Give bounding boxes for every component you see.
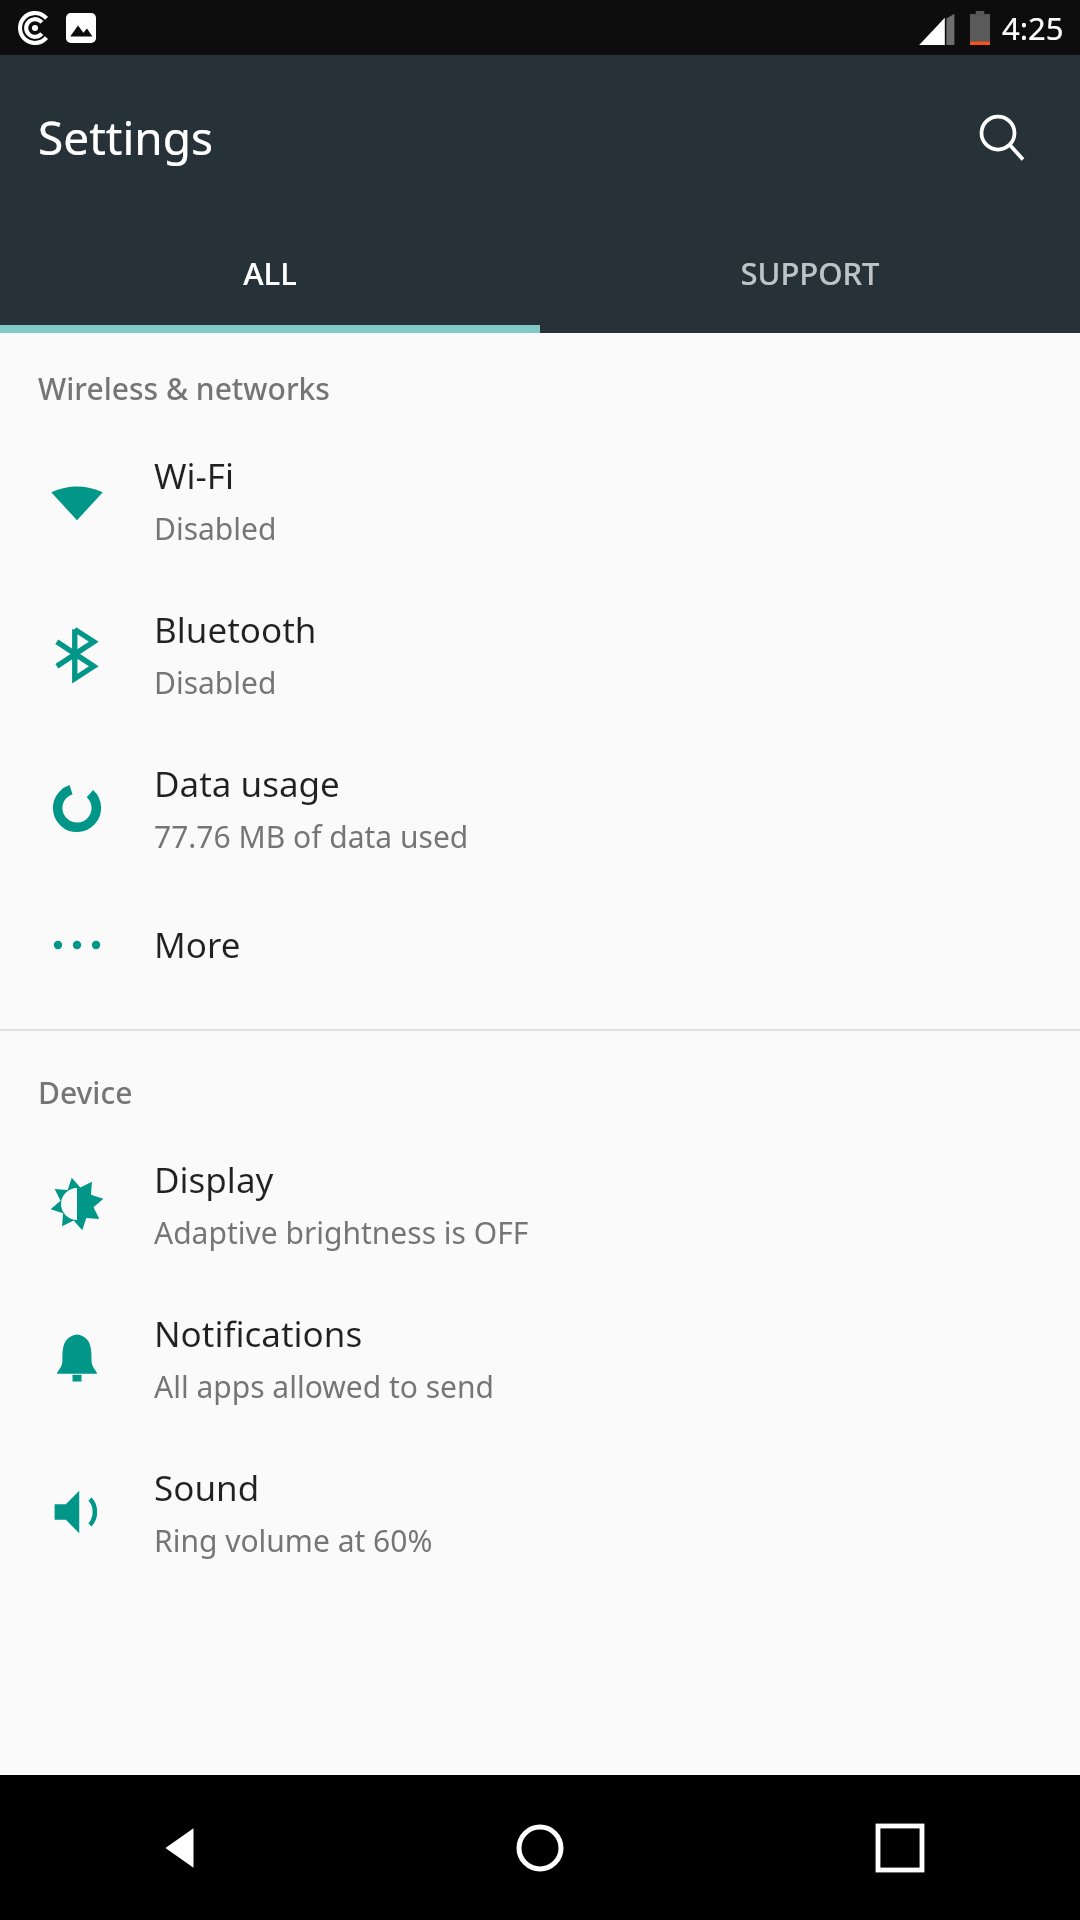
staticText: Data usage <box>154 760 340 808</box>
staticText: Sound <box>154 1464 260 1512</box>
staticText: Ring volume at 60% <box>154 1520 433 1561</box>
staticText: Wireless & networks <box>38 368 330 409</box>
staticText: All apps allowed to send <box>154 1366 495 1407</box>
staticText: Disabled <box>154 508 277 549</box>
button[interactable]: Back <box>0 1775 360 1920</box>
button[interactable]: Home <box>360 1775 720 1920</box>
button[interactable]: SUPPORT <box>540 220 1080 325</box>
staticText: 4:25 <box>1002 7 1064 49</box>
staticText: Device <box>38 1072 133 1113</box>
staticText: Bluetooth <box>154 606 317 654</box>
button[interactable]: Display <box>0 1127 1080 1281</box>
button[interactable]: Data usage <box>0 731 1080 885</box>
button[interactable]: Notifications <box>0 1281 1080 1435</box>
staticText: Disabled <box>154 662 277 703</box>
button[interactable]: Wi-Fi <box>0 423 1080 577</box>
staticText: 77.76 MB of data used <box>154 816 469 857</box>
staticText: Notifications <box>154 1310 363 1358</box>
staticText: Display <box>154 1156 274 1204</box>
staticText: More <box>154 921 241 969</box>
button[interactable]: More <box>0 885 1080 1005</box>
staticText: Adaptive brightness is OFF <box>154 1212 529 1253</box>
staticText: ALL <box>243 252 297 294</box>
staticText: SUPPORT <box>740 252 880 294</box>
button[interactable]: Sound <box>0 1435 1080 1589</box>
button[interactable]: Recent apps <box>720 1775 1080 1920</box>
button[interactable]: Bluetooth <box>0 577 1080 731</box>
staticText: Settings <box>38 106 214 169</box>
staticText: Wi-Fi <box>154 452 235 500</box>
button[interactable]: ALL <box>0 220 540 325</box>
button[interactable]: Search <box>954 90 1050 186</box>
